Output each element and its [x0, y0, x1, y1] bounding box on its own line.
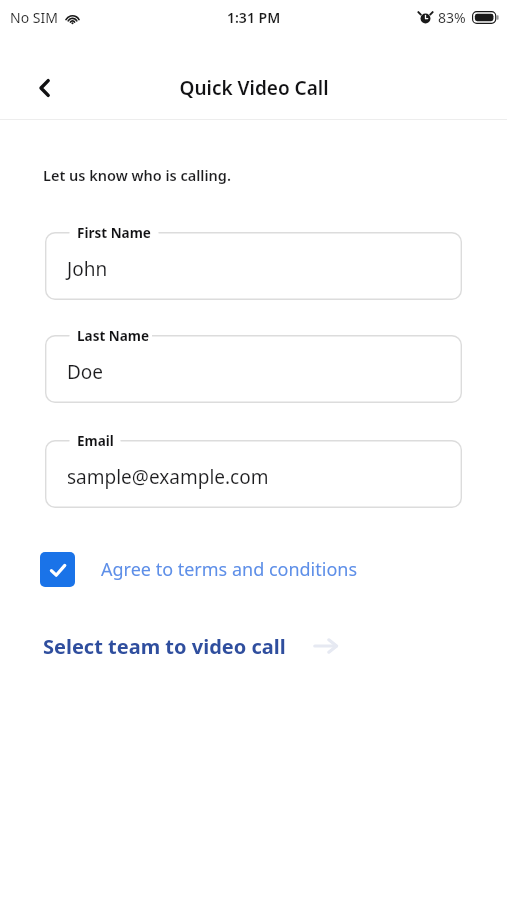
staticText: Let us know who is calling. [43, 165, 231, 185]
button[interactable]: First Name [45, 232, 462, 300]
staticText: 1:31 PM [227, 8, 281, 27]
button[interactable]: Select team to video call [43, 623, 340, 669]
staticText: Email [77, 432, 114, 450]
staticText: Agree to terms and conditions [101, 557, 358, 582]
staticText: Quick Video Call [179, 75, 329, 101]
staticText: 83% [438, 8, 466, 27]
staticText: Last Name [77, 327, 150, 345]
button[interactable]: Agree to terms and conditions [40, 546, 358, 592]
button[interactable]: Email [45, 440, 462, 508]
staticText: No SIM [10, 8, 58, 27]
staticText: sample@example.com [67, 464, 269, 490]
staticText: First Name [77, 224, 151, 242]
button[interactable]: Last Name [45, 335, 462, 403]
staticText: Select team to video call [43, 633, 286, 660]
staticText: John [67, 256, 108, 282]
staticText: Doe [67, 359, 104, 385]
other: Continue [312, 632, 340, 660]
button[interactable]: Back [22, 65, 68, 111]
